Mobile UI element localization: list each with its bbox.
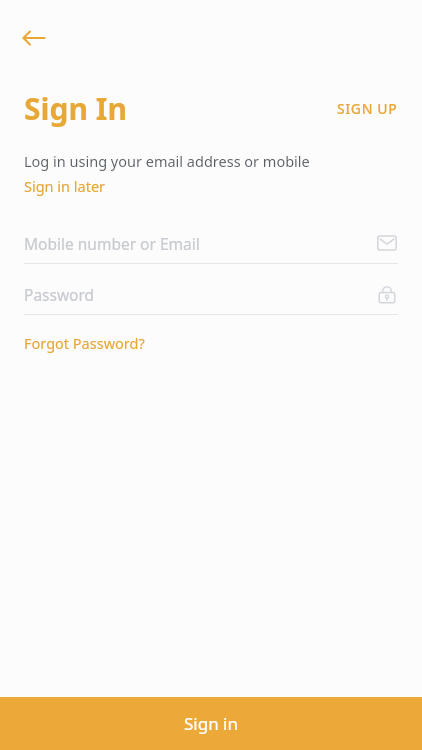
staticText: Password (24, 284, 95, 305)
button[interactable]: SIGN UP (337, 99, 398, 118)
staticText: SIGN UP (337, 99, 398, 118)
other: Email (376, 232, 398, 254)
staticText: Sign in (184, 712, 238, 735)
button[interactable]: Back (12, 16, 56, 60)
button[interactable]: Sign in later (24, 176, 106, 196)
button[interactable]: Forgot Password? (24, 333, 145, 353)
button[interactable]: Sign in (0, 697, 422, 750)
other: Show password (376, 283, 398, 305)
staticText: Forgot Password? (24, 333, 145, 353)
staticText: Mobile number or Email (24, 233, 200, 254)
button[interactable]: Mobile number or Email (24, 232, 398, 264)
button[interactable]: Sign In (24, 88, 127, 129)
button[interactable]: Password (24, 283, 398, 315)
staticText: Sign in later (24, 176, 106, 196)
staticText: Log in using your email address or mobil… (24, 151, 310, 171)
